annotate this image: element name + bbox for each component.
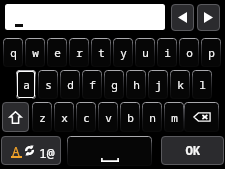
- button[interactable]: x: [54, 102, 74, 132]
- button[interactable]: Move cursor right: [197, 4, 220, 31]
- button[interactable]: n: [142, 102, 162, 132]
- staticText: o: [186, 45, 193, 60]
- staticText: x: [61, 110, 68, 125]
- button[interactable]: s: [38, 70, 58, 99]
- button[interactable]: g: [104, 70, 124, 99]
- button[interactable]: Shift: [2, 102, 29, 132]
- staticText: k: [177, 77, 184, 92]
- staticText: s: [45, 77, 52, 92]
- staticText: b: [127, 110, 134, 125]
- staticText: i: [164, 45, 171, 60]
- button[interactable]: Backspace: [184, 102, 219, 132]
- button[interactable]: k: [170, 70, 190, 99]
- button[interactable]: c: [76, 102, 96, 132]
- staticText: m: [171, 110, 178, 125]
- button[interactable]: w: [25, 38, 45, 67]
- button[interactable]: b: [120, 102, 140, 132]
- button[interactable]: h: [126, 70, 146, 99]
- staticText: w: [32, 45, 39, 60]
- staticText: d: [67, 77, 74, 92]
- staticText: h: [133, 77, 140, 92]
- staticText: q: [10, 45, 17, 60]
- staticText: j: [155, 77, 162, 92]
- staticText: n: [149, 110, 156, 125]
- staticText: 1@: [39, 144, 55, 162]
- button[interactable]: a: [16, 70, 36, 99]
- staticText: e: [54, 45, 61, 60]
- button[interactable]: t: [91, 38, 111, 67]
- button[interactable]: j: [148, 70, 168, 99]
- button[interactable]: Move cursor left: [171, 4, 194, 31]
- staticText: r: [76, 45, 83, 60]
- button[interactable]: u: [135, 38, 155, 67]
- button[interactable]: d: [60, 70, 80, 99]
- button[interactable]: z: [32, 102, 52, 132]
- button[interactable]: OK: [161, 136, 224, 165]
- button[interactable]: [5, 4, 165, 30]
- staticText: y: [120, 45, 127, 60]
- button[interactable]: f: [82, 70, 102, 99]
- staticText: z: [39, 110, 46, 125]
- staticText: l: [199, 77, 206, 92]
- button[interactable]: e: [47, 38, 67, 67]
- staticText: g: [111, 77, 118, 92]
- button[interactable]: m: [164, 102, 184, 132]
- button[interactable]: l: [192, 70, 212, 99]
- button[interactable]: q: [3, 38, 23, 67]
- staticText: t: [98, 45, 105, 60]
- button[interactable]: Change input mode: [1, 136, 61, 165]
- staticText: c: [83, 110, 90, 125]
- staticText: f: [89, 77, 96, 92]
- button[interactable]: y: [113, 38, 133, 67]
- staticText: u: [142, 45, 149, 60]
- button[interactable]: Space: [67, 136, 152, 166]
- button[interactable]: o: [179, 38, 199, 67]
- staticText: a: [23, 77, 30, 92]
- button[interactable]: i: [157, 38, 177, 67]
- staticText: v: [105, 110, 112, 125]
- button[interactable]: p: [201, 38, 221, 67]
- button[interactable]: v: [98, 102, 118, 132]
- staticText: OK: [185, 142, 201, 159]
- staticText: p: [208, 45, 215, 60]
- staticText: A: [12, 142, 20, 160]
- button[interactable]: r: [69, 38, 89, 67]
